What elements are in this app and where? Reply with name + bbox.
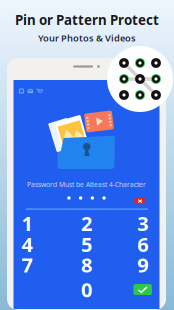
button[interactable]: 7 bbox=[2, 255, 52, 275]
staticText: Pin or Pattern Protect bbox=[15, 11, 159, 29]
staticText: 1 bbox=[21, 210, 32, 236]
button[interactable]: 6 bbox=[118, 234, 168, 254]
button[interactable]: 0 bbox=[61, 279, 111, 299]
button[interactable]: 1 bbox=[2, 213, 52, 233]
staticText: 6 bbox=[137, 231, 148, 257]
staticText: Password Must be Atleast 4-Character bbox=[27, 180, 146, 189]
button[interactable]: 9 bbox=[118, 255, 168, 275]
staticText: 0 bbox=[81, 276, 92, 303]
button[interactable]: 2 bbox=[61, 213, 111, 233]
staticText: 2 bbox=[81, 210, 92, 236]
button[interactable]: Confirm PIN bbox=[118, 279, 168, 299]
staticText: 5 bbox=[81, 231, 92, 257]
staticText: 3 bbox=[137, 210, 148, 236]
button[interactable]: 5 bbox=[61, 234, 111, 254]
button[interactable]: 4 bbox=[2, 234, 52, 254]
staticText: 8 bbox=[81, 251, 92, 278]
button[interactable]: 3 bbox=[118, 213, 168, 233]
staticText: 4 bbox=[21, 231, 32, 257]
staticText: 9 bbox=[137, 251, 148, 278]
staticText: Your Photos & Videos bbox=[38, 32, 136, 44]
button[interactable]: 8 bbox=[61, 255, 111, 275]
staticText: 7 bbox=[21, 251, 32, 278]
